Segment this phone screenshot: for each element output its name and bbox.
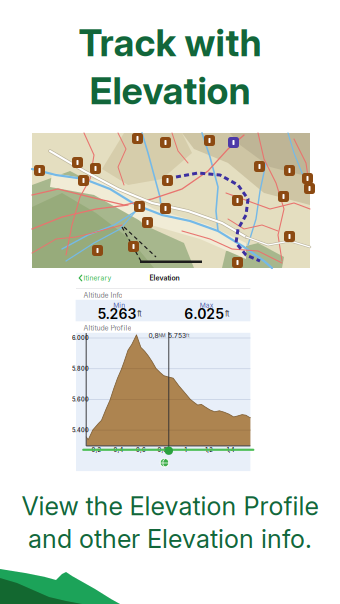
staticText: 5.753 — [168, 331, 186, 340]
staticText: 1,2 — [205, 446, 212, 453]
staticText: 5.400 — [72, 427, 89, 433]
staticText: 6.000 — [72, 335, 89, 341]
button[interactable]: Itinerary — [78, 274, 138, 282]
staticText: Max — [200, 301, 214, 309]
staticText: Elevation — [89, 68, 250, 113]
staticText: 0,6 — [136, 446, 146, 453]
staticText: Itinerary — [83, 274, 111, 282]
staticText: 0,2 — [91, 446, 100, 453]
staticText: 5.600 — [72, 396, 89, 403]
staticText: 1,4 — [227, 446, 235, 453]
staticText: NM — [158, 333, 165, 338]
staticText: Track with — [78, 20, 261, 65]
staticText: ft — [225, 309, 229, 318]
staticText: View the Elevation Profile — [21, 491, 318, 521]
staticText: 6.025 — [184, 305, 224, 322]
staticText: Altitude Info — [83, 291, 122, 299]
staticText: 5.800 — [72, 365, 89, 372]
staticText: ft — [137, 309, 141, 318]
staticText: 0,4 — [113, 446, 123, 453]
staticText: 1 — [184, 446, 186, 453]
staticText: Min — [113, 301, 125, 309]
staticText: 0,8 — [148, 331, 158, 340]
staticText: Altitude Profile — [83, 324, 131, 332]
staticText: 0,8 — [157, 446, 167, 453]
staticText: 5.263 — [97, 305, 136, 322]
staticText: Elevation — [149, 274, 179, 282]
staticText: ft — [186, 333, 189, 338]
staticText: and other Elevation info. — [28, 523, 312, 554]
